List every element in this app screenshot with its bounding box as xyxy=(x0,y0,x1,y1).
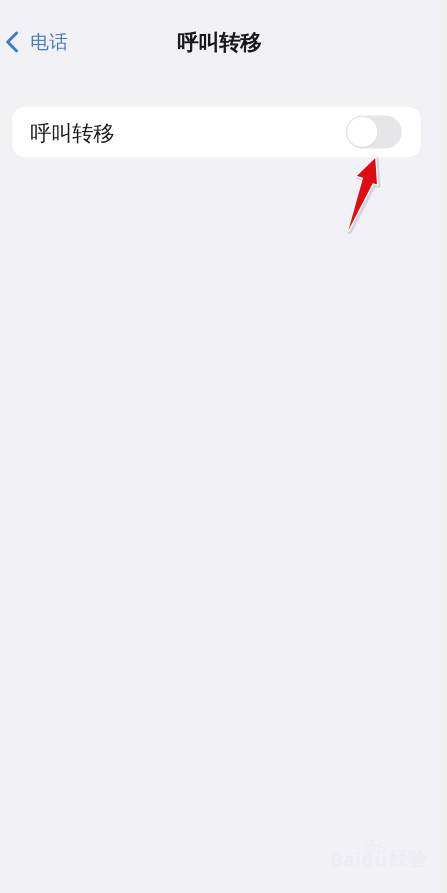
button[interactable]: 呼叫转移 xyxy=(12,107,421,157)
staticText: 呼叫转移 xyxy=(30,120,114,147)
button[interactable]: 电话 xyxy=(0,23,78,60)
staticText: 呼叫转移 xyxy=(177,30,261,56)
staticText: 电话 xyxy=(30,30,68,53)
